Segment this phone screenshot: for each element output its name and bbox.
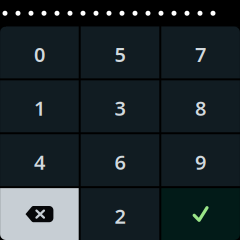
button[interactable]: 2 — [81, 188, 159, 240]
staticText: 7 — [195, 41, 206, 67]
button[interactable]: 5 — [81, 26, 159, 78]
button[interactable]: Delete — [0, 188, 79, 240]
button[interactable]: 1 — [0, 80, 79, 132]
button[interactable]: 6 — [81, 134, 159, 186]
button[interactable]: 0 — [0, 26, 79, 78]
staticText: 2 — [114, 203, 125, 229]
staticText: 3 — [114, 95, 125, 121]
staticText: 9 — [195, 149, 206, 175]
button[interactable]: Confirm — [161, 188, 240, 240]
button[interactable]: 7 — [161, 26, 240, 78]
staticText: 1 — [34, 95, 45, 121]
button[interactable]: 9 — [161, 134, 240, 186]
staticText: 0 — [34, 41, 45, 67]
staticText: 4 — [34, 149, 45, 175]
button[interactable]: 4 — [0, 134, 79, 186]
staticText: 8 — [195, 95, 206, 121]
staticText: 6 — [114, 149, 125, 175]
button[interactable]: 8 — [161, 80, 240, 132]
staticText: 5 — [114, 41, 125, 67]
button[interactable]: 3 — [81, 80, 159, 132]
